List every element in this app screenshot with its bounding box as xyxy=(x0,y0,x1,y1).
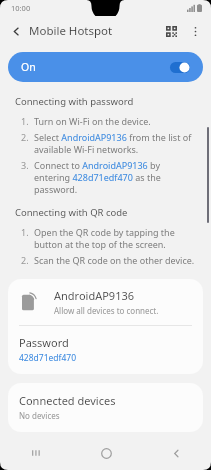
staticText: 1. xyxy=(21,226,29,238)
button[interactable]: Connected devices xyxy=(8,383,203,432)
staticText: 2. xyxy=(21,131,29,143)
button[interactable]: More options xyxy=(183,19,207,43)
button[interactable]: Show QR code xyxy=(159,19,183,43)
staticText: On xyxy=(21,60,36,74)
staticText: 10:00 xyxy=(11,3,31,13)
staticText: No devices xyxy=(19,410,60,421)
staticText: Turn on Wi-Fi on the device. xyxy=(34,115,151,127)
staticText: Scan the QR code on the other device. xyxy=(34,254,195,266)
staticText: 428d71edf470 xyxy=(19,352,77,364)
button[interactable]: On xyxy=(8,52,203,82)
staticText: Open the QR code by tapping the button a… xyxy=(34,226,196,250)
staticText: Allow all devices to connect. xyxy=(54,305,159,316)
staticText: Select AndroidAP9136 from the list of av… xyxy=(34,131,196,155)
staticText: AndroidAP9136 xyxy=(54,288,135,303)
staticText: Connected devices xyxy=(19,393,116,408)
button[interactable]: Back xyxy=(5,20,27,42)
staticText: Connecting with QR code xyxy=(15,206,128,219)
button[interactable]: Password xyxy=(8,326,203,374)
staticText: Password xyxy=(19,335,69,350)
button[interactable]: Home xyxy=(71,436,141,470)
staticText: 1. xyxy=(21,115,29,127)
staticText: Mobile Hotspot xyxy=(29,23,113,39)
staticText: Connecting with password xyxy=(15,95,134,108)
staticText: 2. xyxy=(21,254,29,266)
staticText: 3. xyxy=(21,159,29,171)
button[interactable]: Back xyxy=(141,436,211,470)
button[interactable]: AndroidAP9136 xyxy=(8,279,203,325)
button[interactable]: Recent apps xyxy=(0,436,71,470)
staticText: Connect to AndroidAP9136 by entering 428… xyxy=(34,159,196,195)
